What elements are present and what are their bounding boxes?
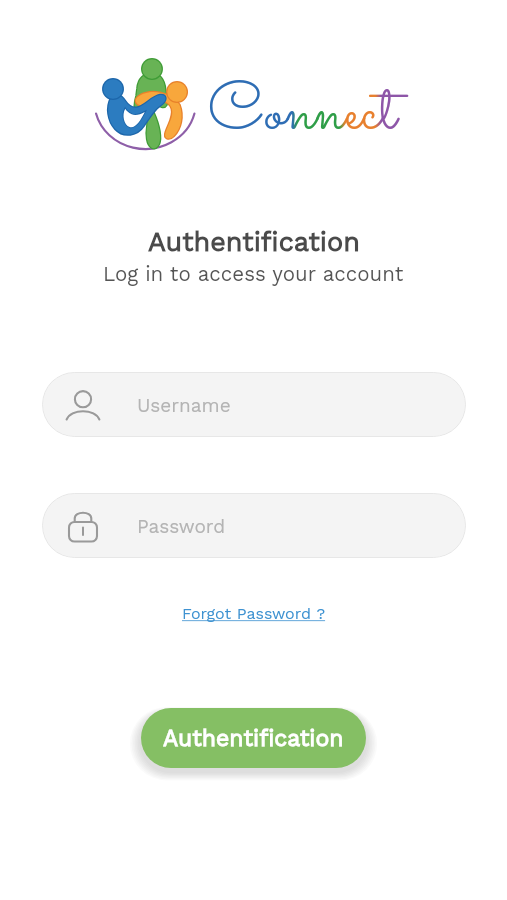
staticText: Authentification [163, 725, 344, 752]
staticText: Forgot Password ? [182, 604, 326, 623]
button[interactable]: Authentification [141, 708, 366, 768]
staticText: Username [137, 394, 231, 416]
staticText: Password [137, 515, 226, 537]
button[interactable]: Password field [42, 493, 466, 558]
button[interactable]: Forgot Password ? [176, 600, 332, 627]
staticText: Log in to access your account [103, 262, 404, 286]
staticText: Connect [208, 66, 397, 163]
staticText: Authentification [148, 226, 360, 258]
button[interactable]: User name field [42, 372, 466, 437]
